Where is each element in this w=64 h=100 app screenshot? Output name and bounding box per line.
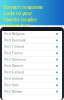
button[interactable]: Visit Norway	[2, 89, 62, 95]
staticText: Visit Belgium	[4, 32, 25, 36]
staticText: Visit Iceland	[4, 71, 24, 74]
button[interactable]: Visit Greece	[2, 63, 62, 69]
button[interactable]: Visit Italy	[2, 82, 62, 89]
staticText: Visit Germany	[4, 58, 26, 61]
button[interactable]: Visit Denmark	[2, 37, 62, 44]
button[interactable]: Visit Ireland	[2, 76, 62, 82]
staticText: formats fast	[3, 24, 29, 29]
staticText: Visit Norway	[4, 90, 23, 93]
staticText: Visit Greece	[4, 64, 23, 68]
button[interactable]: Visit Iceland	[2, 69, 62, 76]
staticText: Visit Ireland	[4, 77, 23, 80]
button[interactable]: Visit France	[2, 50, 62, 57]
staticText: Convert response	[3, 5, 43, 10]
staticText: Visit France	[4, 51, 23, 55]
staticText: favorite header	[3, 17, 37, 22]
staticText: Visit Denmark	[4, 39, 26, 42]
staticText: Visit Finland	[4, 45, 24, 48]
staticText: code to your	[3, 11, 32, 16]
button[interactable]: Visit Finland	[2, 44, 62, 50]
button[interactable]: Visit Belgium	[2, 31, 62, 37]
button[interactable]: Visit Germany	[2, 57, 62, 63]
staticText: Visit Italy	[4, 83, 19, 87]
